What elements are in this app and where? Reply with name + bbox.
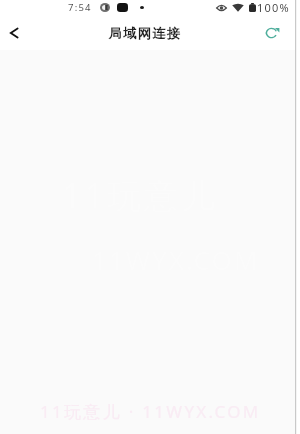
staticText: 7:54 <box>68 1 92 14</box>
staticText: 11玩意儿 · 11WYX.COM <box>40 400 261 423</box>
staticText: 局域网连接 <box>108 25 182 42</box>
button[interactable]: Back <box>0 15 28 50</box>
button[interactable]: Refresh <box>258 20 284 46</box>
staticText: 100% <box>257 0 290 15</box>
